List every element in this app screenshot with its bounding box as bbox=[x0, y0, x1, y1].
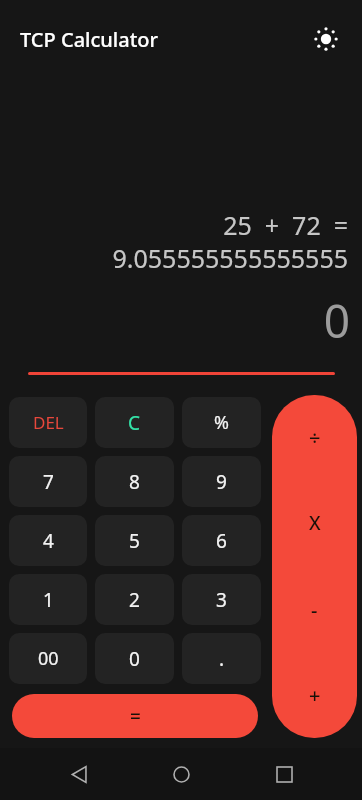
button[interactable]: 8 bbox=[95, 456, 174, 507]
staticText: 9 bbox=[216, 469, 227, 495]
staticText: - bbox=[311, 596, 318, 623]
button[interactable]: 5 bbox=[95, 515, 174, 566]
staticText: ÷ bbox=[309, 424, 321, 451]
staticText: TCP Calculator bbox=[20, 26, 159, 53]
staticText: DEL bbox=[33, 411, 64, 434]
button[interactable]: + bbox=[272, 652, 357, 738]
button[interactable]: Toggle theme bbox=[304, 17, 348, 61]
button[interactable]: 3 bbox=[182, 574, 261, 625]
staticText: 00 bbox=[38, 646, 59, 671]
button[interactable]: = bbox=[12, 694, 258, 738]
staticText: . bbox=[219, 646, 225, 672]
button[interactable]: Recent apps bbox=[260, 750, 308, 798]
button[interactable]: DEL bbox=[9, 397, 87, 448]
staticText: = bbox=[130, 703, 141, 729]
staticText: 7 bbox=[43, 469, 54, 495]
staticText: 5 bbox=[129, 528, 140, 554]
button[interactable]: 6 bbox=[182, 515, 261, 566]
staticText: 0 bbox=[129, 646, 140, 672]
staticText: 25 + 72 = 9.055555555555555 bbox=[14, 208, 348, 275]
button[interactable]: 1 bbox=[9, 574, 87, 625]
staticText: X bbox=[309, 510, 321, 536]
button[interactable]: 0 bbox=[95, 633, 174, 684]
button[interactable]: % bbox=[182, 397, 261, 448]
button[interactable]: X bbox=[272, 480, 357, 566]
button[interactable]: C bbox=[95, 397, 174, 448]
button[interactable]: - bbox=[272, 566, 357, 652]
staticText: C bbox=[128, 410, 141, 436]
button[interactable]: ÷ bbox=[272, 395, 357, 480]
button[interactable]: 4 bbox=[9, 515, 87, 566]
staticText: 6 bbox=[216, 528, 227, 554]
staticText: 4 bbox=[43, 528, 54, 554]
button[interactable]: Back bbox=[55, 750, 103, 798]
button[interactable]: 9 bbox=[182, 456, 261, 507]
staticText: 8 bbox=[129, 469, 140, 495]
button[interactable]: 7 bbox=[9, 456, 87, 507]
button[interactable]: 00 bbox=[9, 633, 87, 684]
staticText: + bbox=[309, 682, 321, 709]
button[interactable]: . bbox=[182, 633, 261, 684]
staticText: % bbox=[214, 410, 229, 435]
staticText: 2 bbox=[129, 587, 140, 613]
button[interactable]: Home bbox=[157, 750, 205, 798]
staticText: 3 bbox=[216, 587, 227, 613]
staticText: 1 bbox=[43, 587, 54, 613]
button[interactable]: 2 bbox=[95, 574, 174, 625]
staticText: 0 bbox=[0, 289, 350, 352]
